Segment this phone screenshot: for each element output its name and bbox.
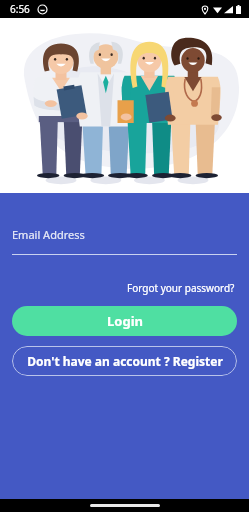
button[interactable]: Email Address xyxy=(12,227,237,255)
button[interactable]: Forgot your password? xyxy=(125,279,237,297)
staticText: Email Address xyxy=(12,227,85,242)
button[interactable]: Login xyxy=(12,306,237,336)
staticText: Don't have an account ? Register xyxy=(27,353,223,369)
staticText: Login xyxy=(107,312,143,330)
staticText: 6:56 xyxy=(10,2,30,16)
button[interactable]: Don't have an account ? Register xyxy=(12,346,237,376)
